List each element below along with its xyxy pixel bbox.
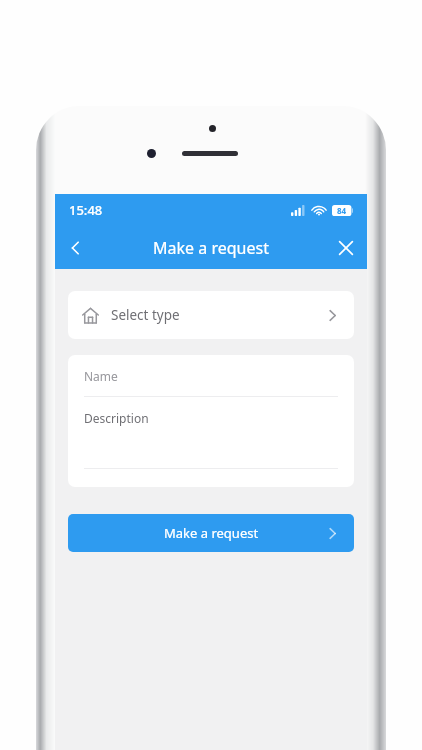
button[interactable]: Close (325, 227, 367, 269)
staticText: Make a request (164, 524, 259, 542)
staticText: 84 (337, 205, 347, 216)
button[interactable]: Name (68, 355, 354, 396)
button[interactable]: Back (55, 227, 97, 269)
button[interactable]: Select type (68, 291, 354, 339)
staticText: Name (84, 368, 118, 384)
staticText: Make a request (153, 237, 269, 259)
button[interactable]: Make a request (68, 514, 354, 552)
button[interactable]: Description (68, 397, 354, 468)
staticText: Select type (111, 306, 180, 324)
staticText: 15:48 (69, 201, 103, 219)
staticText: Description (84, 410, 149, 426)
